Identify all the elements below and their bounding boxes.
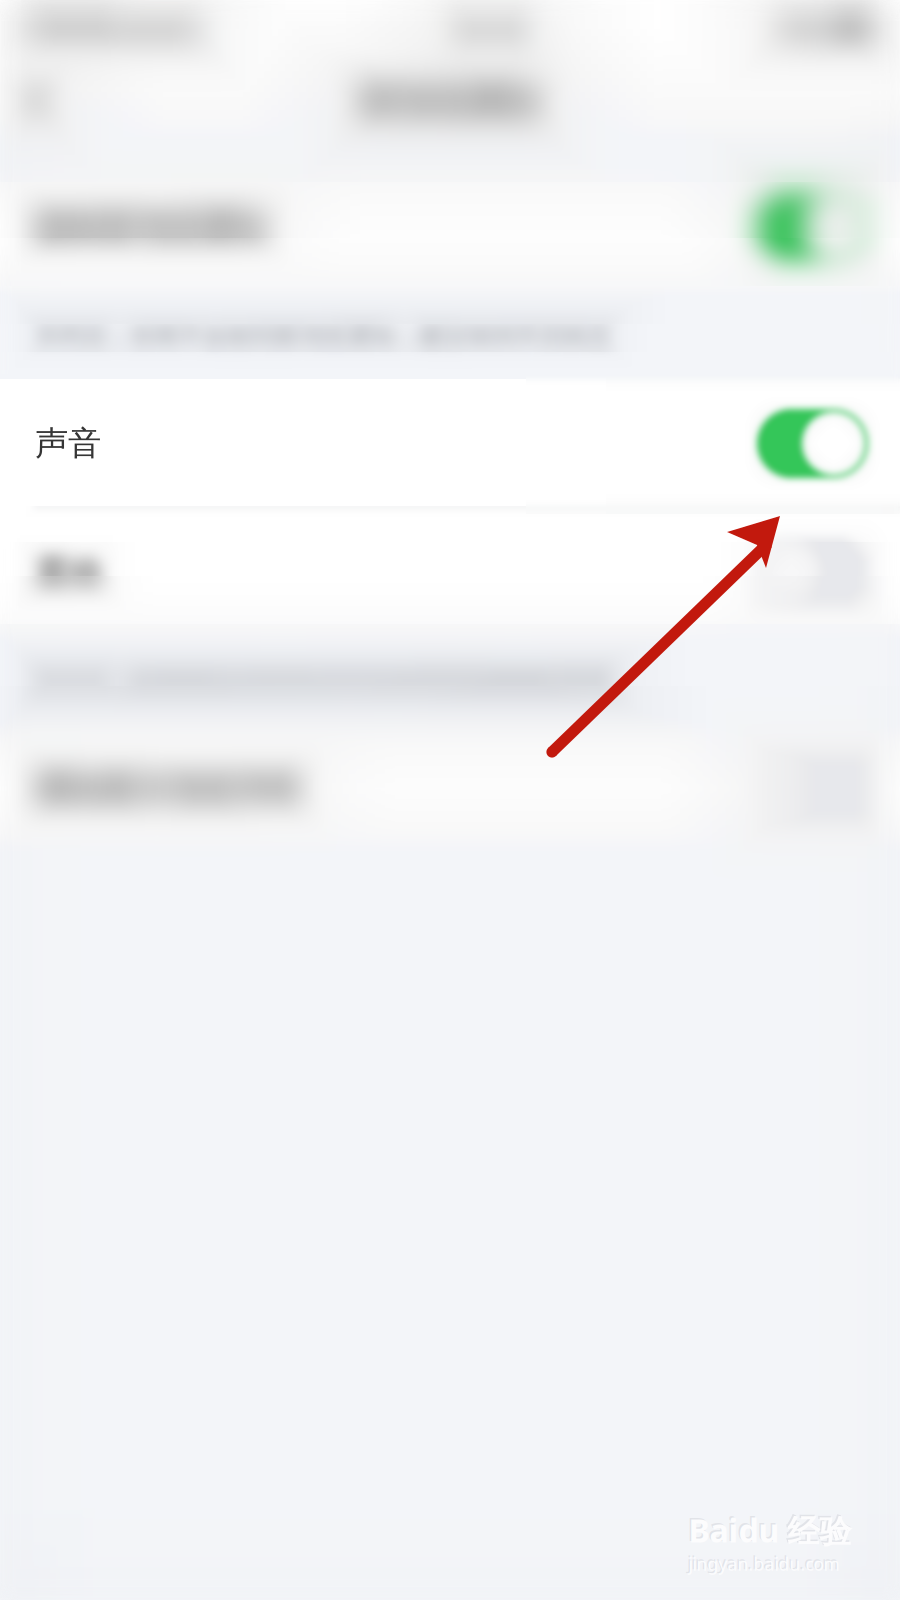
staticText: 声音 — [35, 423, 101, 464]
staticText: 中国移动 — [24, 12, 124, 43]
button[interactable]: 接收新消息通知 — [0, 162, 900, 291]
staticText: 关闭后，你将不会收到新消息通知，建议保持开启状态 — [35, 321, 611, 350]
staticText: 开启后，收到新消息时将会有声音或者震动提醒你查看 — [35, 666, 611, 695]
staticText: 78% — [777, 11, 826, 45]
staticText: 4G — [165, 11, 197, 45]
staticText: 新消息通知 — [360, 79, 540, 123]
staticText: jingyan.baidu.com — [687, 1551, 838, 1574]
staticText: jingyan.baidu.com — [689, 1553, 840, 1576]
button[interactable]: Back — [0, 56, 75, 146]
button[interactable]: 通知显示消息详情 — [0, 724, 900, 853]
staticText: 接收新消息通知 — [35, 206, 266, 247]
button[interactable]: 声音 — [0, 379, 900, 508]
staticText: 10:24 — [451, 9, 523, 47]
staticText: Baidu 经验 — [689, 1509, 852, 1552]
staticText: Baidu 经验 — [687, 1507, 850, 1550]
staticText: 通知显示消息详情 — [35, 768, 299, 809]
button[interactable]: 震动 — [0, 508, 900, 637]
staticText: 震动 — [35, 552, 101, 593]
